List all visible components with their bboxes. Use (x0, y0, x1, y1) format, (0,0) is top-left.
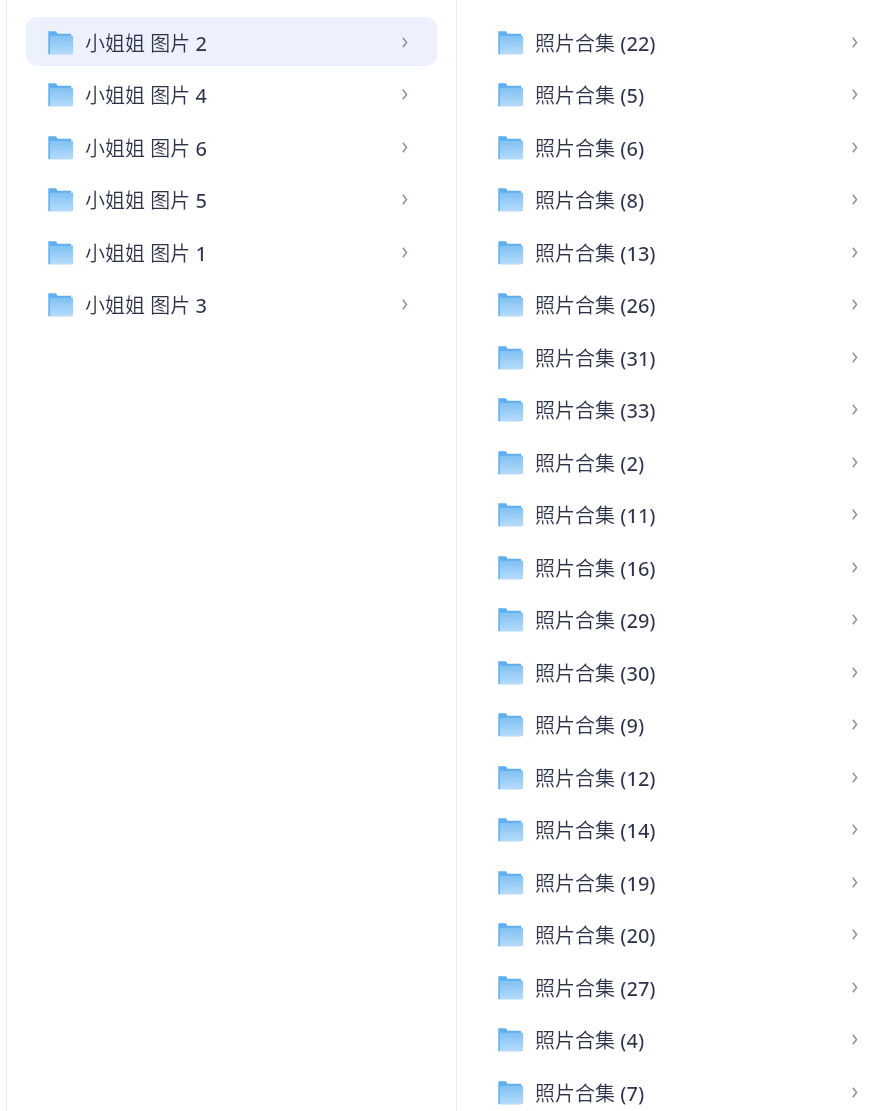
staticText: 照片合集 (7) (535, 1078, 852, 1107)
staticText: 照片合集 (11) (535, 500, 852, 529)
button[interactable]: 照片合集 (22) (476, 17, 872, 66)
button[interactable]: 小姐姐 图片 1 (26, 227, 437, 276)
button[interactable]: 照片合集 (2) (476, 437, 872, 486)
staticText: 照片合集 (31) (535, 343, 852, 372)
staticText: 照片合集 (14) (535, 815, 852, 844)
staticText: 照片合集 (22) (535, 28, 852, 57)
staticText: 照片合集 (13) (535, 238, 852, 267)
button[interactable]: 照片合集 (4) (476, 1014, 872, 1063)
button[interactable]: 照片合集 (14) (476, 804, 872, 853)
staticText: 照片合集 (9) (535, 710, 852, 739)
button[interactable]: 照片合集 (20) (476, 909, 872, 958)
button[interactable]: 照片合集 (6) (476, 122, 872, 171)
staticText: 照片合集 (12) (535, 763, 852, 792)
staticText: 照片合集 (26) (535, 290, 852, 319)
staticText: 小姐姐 图片 2 (85, 28, 402, 57)
staticText: 照片合集 (6) (535, 133, 852, 162)
staticText: 照片合集 (30) (535, 658, 852, 687)
button[interactable]: 照片合集 (16) (476, 542, 872, 591)
staticText: 小姐姐 图片 1 (85, 238, 402, 267)
button[interactable]: 照片合集 (8) (476, 174, 872, 223)
staticText: 照片合集 (29) (535, 605, 852, 634)
button[interactable]: 照片合集 (30) (476, 647, 872, 696)
button[interactable]: 照片合集 (9) (476, 699, 872, 748)
staticText: 照片合集 (4) (535, 1025, 852, 1054)
staticText: 照片合集 (2) (535, 448, 852, 477)
button[interactable]: 小姐姐 图片 5 (26, 174, 437, 223)
button[interactable]: 小姐姐 图片 3 (26, 279, 437, 328)
button[interactable]: 照片合集 (7) (476, 1067, 872, 1111)
staticText: 小姐姐 图片 3 (85, 290, 402, 319)
staticText: 小姐姐 图片 6 (85, 133, 402, 162)
button[interactable]: 照片合集 (5) (476, 69, 872, 118)
button[interactable]: 照片合集 (27) (476, 962, 872, 1011)
button[interactable]: 小姐姐 图片 6 (26, 122, 437, 171)
staticText: 照片合集 (19) (535, 868, 852, 897)
staticText: 照片合集 (5) (535, 80, 852, 109)
button[interactable]: 照片合集 (31) (476, 332, 872, 381)
button[interactable]: 小姐姐 图片 4 (26, 69, 437, 118)
button[interactable]: 小姐姐 图片 2 (26, 17, 437, 66)
button[interactable]: 照片合集 (13) (476, 227, 872, 276)
staticText: 照片合集 (8) (535, 185, 852, 214)
staticText: 照片合集 (27) (535, 973, 852, 1002)
staticText: 照片合集 (16) (535, 553, 852, 582)
staticText: 照片合集 (20) (535, 920, 852, 949)
button[interactable]: 照片合集 (19) (476, 857, 872, 906)
button[interactable]: 照片合集 (29) (476, 594, 872, 643)
staticText: 照片合集 (33) (535, 395, 852, 424)
button[interactable]: 照片合集 (26) (476, 279, 872, 328)
button[interactable]: 照片合集 (33) (476, 384, 872, 433)
staticText: 小姐姐 图片 5 (85, 185, 402, 214)
button[interactable]: 照片合集 (12) (476, 752, 872, 801)
staticText: 小姐姐 图片 4 (85, 80, 402, 109)
button[interactable]: 照片合集 (11) (476, 489, 872, 538)
